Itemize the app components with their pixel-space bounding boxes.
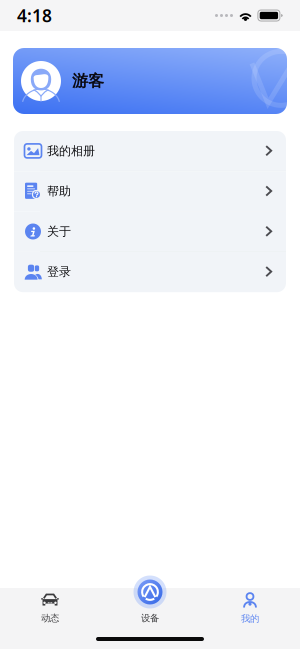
staticText: 我的	[241, 613, 259, 624]
staticText: 游客	[72, 71, 104, 91]
staticText: 登录	[47, 264, 71, 279]
button[interactable]: 关于	[14, 212, 286, 252]
button[interactable]: 我的相册	[14, 131, 286, 171]
staticText: 动态	[41, 612, 59, 624]
button[interactable]: 设备	[100, 588, 200, 624]
button[interactable]: 帮助	[14, 171, 286, 212]
staticText: 4:18	[17, 4, 52, 27]
button[interactable]: 登录	[14, 252, 286, 292]
staticText: 帮助	[47, 184, 71, 198]
button[interactable]: 动态	[0, 588, 100, 624]
button[interactable]: 设备	[133, 575, 167, 609]
staticText: 我的相册	[47, 143, 95, 158]
staticText: 设备	[141, 612, 159, 624]
staticText: 关于	[47, 224, 71, 239]
button[interactable]: 我的	[200, 588, 300, 624]
